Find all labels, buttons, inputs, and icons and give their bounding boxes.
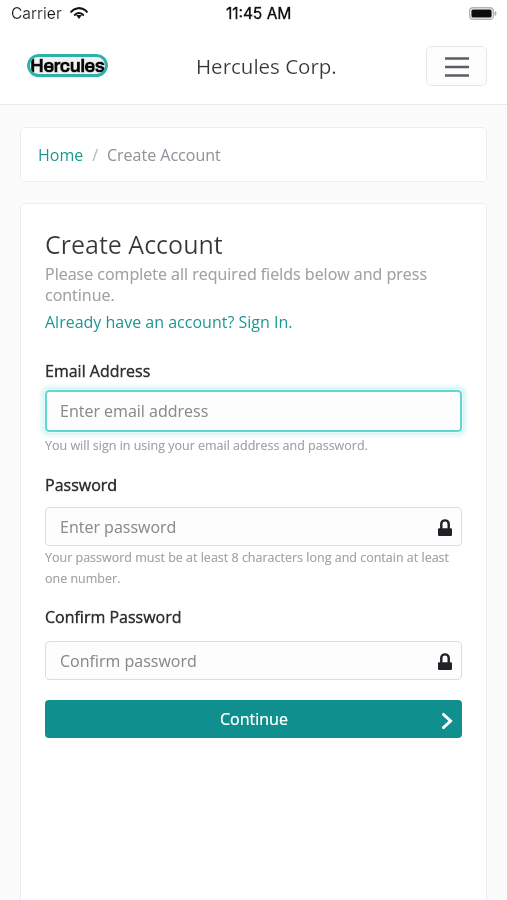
button[interactable]: Enter password bbox=[45, 507, 462, 546]
staticText: / bbox=[84, 144, 107, 166]
button[interactable]: Already have an account? Sign In. bbox=[45, 311, 293, 333]
staticText: Create Account bbox=[45, 227, 223, 261]
staticText: Your password must be at least 8 charact… bbox=[45, 549, 462, 587]
staticText: Confirm password bbox=[60, 650, 197, 672]
staticText: Email Address bbox=[45, 360, 151, 382]
staticText: You will sign in using your email addres… bbox=[45, 437, 368, 454]
button[interactable]: Continue bbox=[45, 700, 462, 738]
staticText: Hercules Corp. bbox=[196, 52, 337, 80]
button[interactable]: Menu bbox=[426, 46, 487, 86]
staticText: 11:45 AM bbox=[226, 4, 292, 23]
staticText: Create Account bbox=[107, 144, 221, 166]
staticText: Enter email address bbox=[60, 400, 209, 422]
staticText: Hercules bbox=[30, 55, 105, 76]
staticText: Continue bbox=[220, 708, 288, 730]
staticText: Carrier bbox=[11, 4, 62, 23]
button[interactable]: Hercules home bbox=[27, 54, 108, 77]
staticText: Confirm Password bbox=[45, 606, 182, 628]
button[interactable]: Confirm password bbox=[45, 641, 462, 680]
staticText: Password bbox=[45, 474, 118, 496]
staticText: Please complete all required fields belo… bbox=[45, 263, 462, 306]
button[interactable]: Home bbox=[38, 144, 84, 166]
staticText: Enter password bbox=[60, 516, 177, 538]
button[interactable]: Enter email address bbox=[45, 390, 462, 432]
